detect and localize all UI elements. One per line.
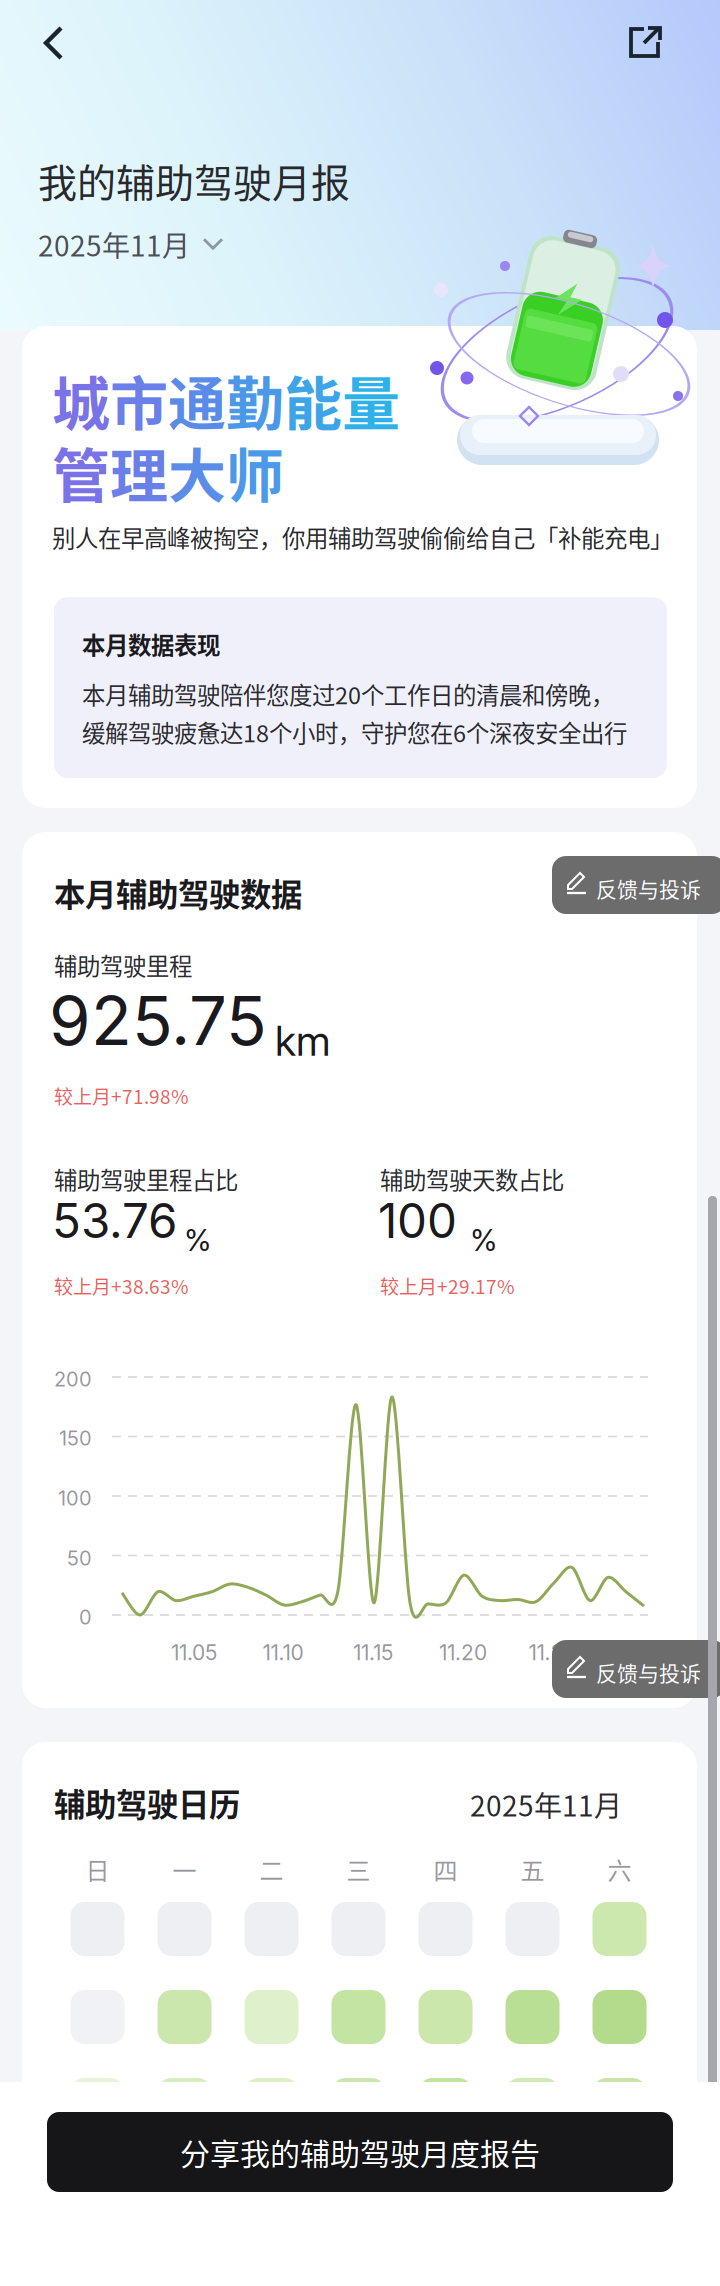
staticText: 较上月+29.17% bbox=[380, 1272, 514, 1299]
staticText: 反馈与投诉 bbox=[596, 1657, 701, 1687]
staticText: 较上月+71.98% bbox=[54, 1082, 188, 1109]
staticText: 本月数据表现 bbox=[82, 627, 220, 661]
staticText: 100 bbox=[378, 1192, 457, 1249]
staticText: 别人在早高峰被掏空，你用辅助驾驶偷偷给自己「补能充电」 bbox=[52, 520, 673, 554]
staticText: 较上月+38.63% bbox=[54, 1272, 188, 1299]
staticText: 11.15 bbox=[353, 1640, 393, 1665]
staticText: 2025年11月 bbox=[470, 1784, 622, 1824]
staticText: 我的辅助驾驶月报 bbox=[38, 152, 350, 208]
button[interactable]: 2025年11月 bbox=[38, 224, 226, 264]
staticText: 缓解驾驶疲惫达18个小时，守护您在6个深夜安全出行 bbox=[82, 715, 627, 749]
staticText: 分享我的辅助驾驶月度报告 bbox=[180, 2130, 540, 2174]
staticText: 管 bbox=[52, 430, 110, 514]
staticText: 53.76 bbox=[52, 1192, 177, 1249]
staticText: 本月辅助驾驶陪伴您度过20个工作日的清晨和傍晚， bbox=[82, 677, 614, 711]
staticText: 一 bbox=[172, 1852, 196, 1887]
staticText: 11.05 bbox=[171, 1640, 217, 1665]
staticText: 辅助驾驶里程 bbox=[54, 948, 192, 982]
staticText: % bbox=[184, 1222, 211, 1258]
staticText: 量 bbox=[342, 358, 400, 442]
staticText: 11.25 bbox=[528, 1640, 575, 1665]
staticText: 925.75 bbox=[49, 980, 267, 1061]
staticText: 日 bbox=[85, 1852, 109, 1887]
button[interactable]: Share bbox=[613, 12, 677, 74]
staticText: 本月辅助驾驶数据 bbox=[54, 870, 302, 915]
staticText: 能 bbox=[284, 358, 342, 442]
staticText: 11.30 bbox=[617, 1640, 664, 1665]
staticText: % bbox=[470, 1222, 497, 1258]
staticText: 200 bbox=[54, 1367, 92, 1391]
staticText: 四 bbox=[433, 1852, 457, 1887]
staticText: 100 bbox=[58, 1486, 92, 1510]
staticText: 辅助驾驶日历 bbox=[54, 1780, 240, 1825]
staticText: 理 bbox=[110, 430, 168, 514]
staticText: 11.20 bbox=[439, 1640, 487, 1665]
staticText: 50 bbox=[67, 1546, 92, 1570]
button[interactable]: Back bbox=[22, 12, 86, 74]
staticText: 五 bbox=[520, 1852, 544, 1887]
staticText: 三 bbox=[346, 1852, 370, 1887]
staticText: 2025年11月 bbox=[38, 224, 190, 264]
staticText: 六 bbox=[607, 1852, 631, 1887]
staticText: 勤 bbox=[226, 358, 284, 442]
staticText: 反馈与投诉 bbox=[596, 873, 701, 903]
button[interactable]: 分享我的辅助驾驶月度报告 bbox=[47, 2112, 673, 2192]
staticText: 师 bbox=[226, 430, 284, 514]
staticText: 大 bbox=[168, 430, 226, 514]
staticText: 11.10 bbox=[262, 1640, 303, 1665]
button[interactable]: 反馈与投诉 bbox=[552, 856, 720, 914]
staticText: 辅助驾驶里程占比 bbox=[54, 1162, 238, 1196]
staticText: 150 bbox=[59, 1426, 92, 1450]
staticText: km bbox=[275, 1016, 330, 1066]
staticText: 辅助驾驶天数占比 bbox=[380, 1162, 564, 1196]
staticText: 市 bbox=[110, 358, 168, 442]
staticText: 通 bbox=[168, 358, 226, 442]
staticText: 二 bbox=[259, 1852, 283, 1887]
staticText: 0 bbox=[79, 1605, 92, 1629]
staticText: 城 bbox=[52, 358, 110, 442]
button[interactable]: 反馈与投诉 bbox=[552, 1640, 720, 1698]
